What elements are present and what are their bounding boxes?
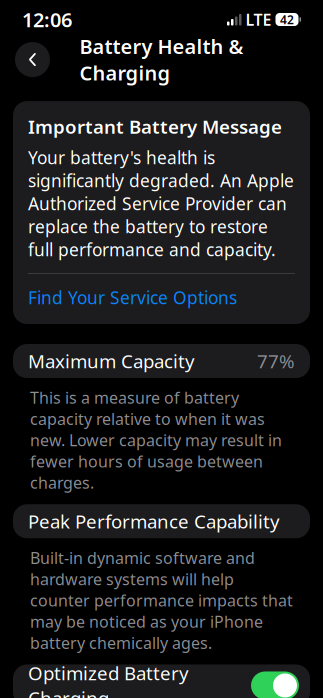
button[interactable]: Optimized Battery Charging [13,664,310,698]
button[interactable]: Maximum Capacity [13,344,310,378]
staticText: 12:06 [22,6,72,33]
button[interactable]: Peak Performance Capability [13,504,310,538]
staticText: Maximum Capacity [28,349,195,373]
button[interactable]: Find Your Service Options [28,274,237,311]
staticText: Find Your Service Options [28,286,237,309]
staticText: Battery Health & Charging [79,33,243,86]
staticText: LTE [245,9,271,30]
staticText: This is a measure of battery capacity re… [30,387,282,493]
staticText: Peak Performance Capability [28,509,280,534]
staticText: Built-in dynamic software and hardware s… [30,547,293,653]
staticText: 42 [280,11,294,27]
staticText: Important Battery Message [28,114,282,139]
button[interactable]: Back [15,42,50,77]
staticText: Optimized Battery Charging [28,661,189,698]
staticText: Your battery's health is significantly d… [28,146,294,261]
staticText: 77% [257,349,295,373]
